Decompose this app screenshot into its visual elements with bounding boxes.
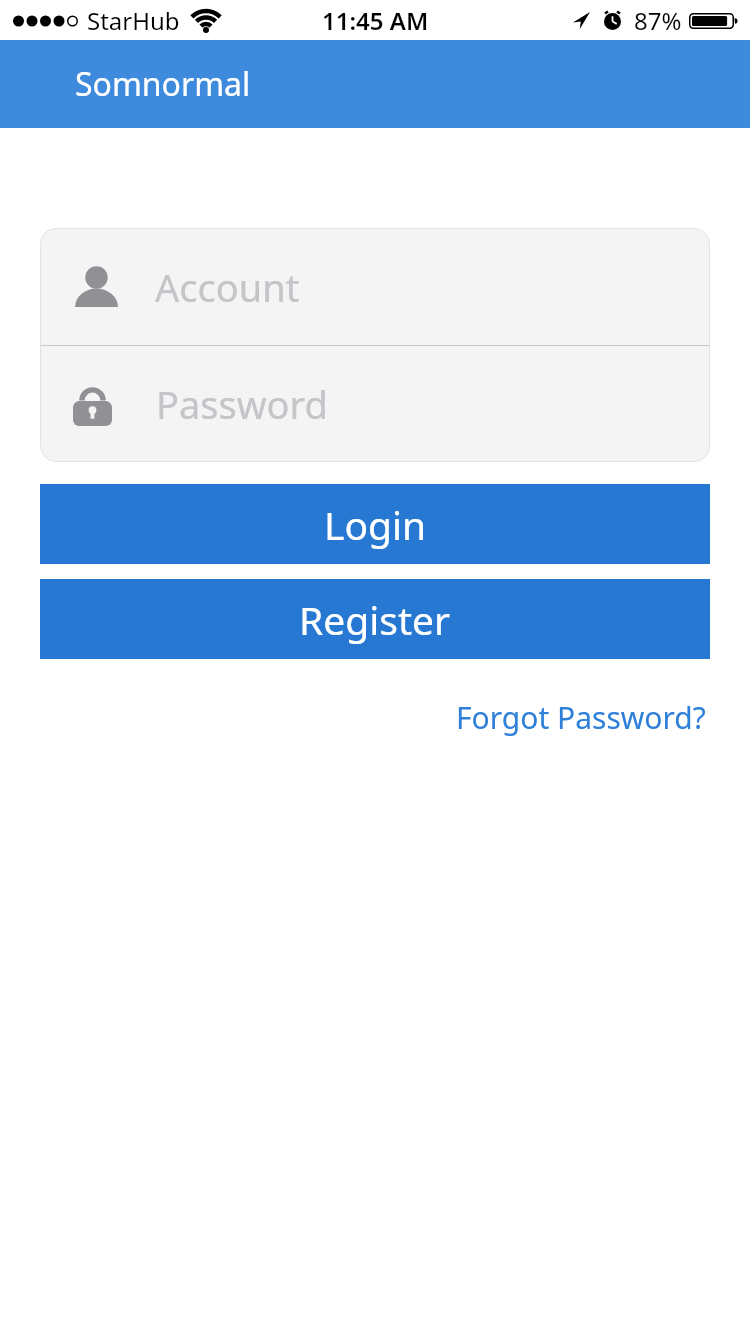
button[interactable]: Account xyxy=(40,228,710,345)
button[interactable]: Forgot Password? xyxy=(456,697,706,738)
staticText: Login xyxy=(324,498,427,551)
button[interactable]: Login xyxy=(40,484,710,564)
staticText: 87% xyxy=(634,4,682,37)
staticText: Account xyxy=(155,261,300,313)
staticText: Password xyxy=(156,378,328,430)
button[interactable]: Register xyxy=(40,579,710,659)
button[interactable]: Password xyxy=(40,346,710,462)
staticText: Register xyxy=(299,593,451,646)
staticText: StarHub xyxy=(87,4,180,37)
staticText: Somnormal xyxy=(75,62,251,106)
staticText: 11:45 AM xyxy=(322,4,429,37)
